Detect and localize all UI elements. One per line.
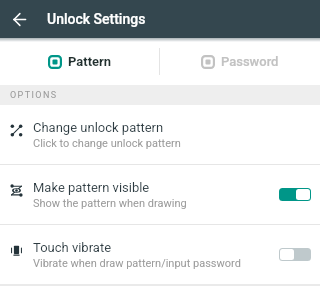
staticText: Change unlock pattern: [33, 120, 164, 135]
staticText: OPTIONS: [10, 90, 58, 101]
button[interactable]: Change unlock pattern: [0, 105, 320, 164]
button[interactable]: Touch vibrate: [0, 225, 320, 284]
button[interactable]: Make pattern visible: [0, 165, 320, 224]
button[interactable]: Password: [160, 38, 320, 85]
staticText: Show the pattern when drawing: [33, 197, 187, 210]
staticText: Password: [221, 54, 279, 69]
staticText: Vibrate when draw pattern/input password: [33, 257, 241, 270]
staticText: Unlock Settings: [47, 11, 146, 27]
staticText: Pattern: [68, 54, 112, 69]
button[interactable]: Toggle off: [279, 248, 311, 261]
staticText: Make pattern visible: [33, 180, 150, 195]
staticText: Click to change unlock pattern: [33, 137, 181, 150]
button[interactable]: Pattern: [0, 38, 159, 85]
staticText: Touch vibrate: [33, 240, 112, 255]
button[interactable]: Back: [0, 0, 38, 38]
button[interactable]: Toggle on: [279, 188, 311, 201]
